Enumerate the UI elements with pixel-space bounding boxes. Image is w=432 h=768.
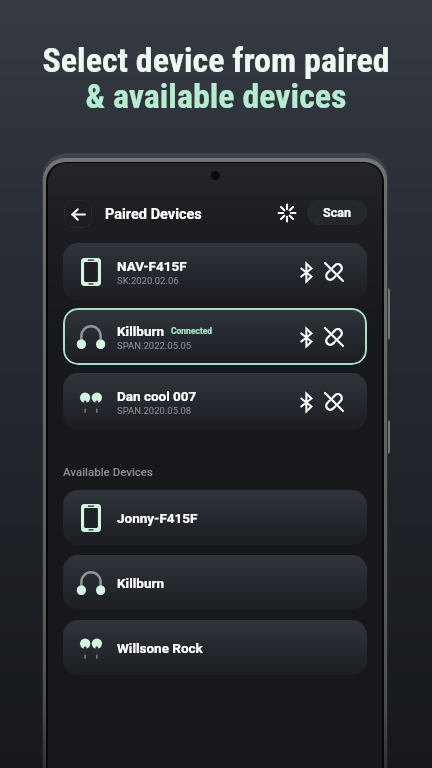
button[interactable]: Refresh scanning — [275, 201, 299, 225]
button[interactable]: Dan cool 007 — [63, 373, 367, 430]
staticText: Available Devices — [63, 465, 153, 478]
button[interactable]: Unpair — [323, 261, 345, 283]
staticText: Paired Devices — [105, 206, 202, 223]
staticText: Scan — [323, 205, 351, 220]
button[interactable]: Bluetooth — [295, 261, 317, 283]
staticText: & available devices — [85, 76, 347, 116]
button[interactable]: NAV-F415F — [63, 243, 367, 300]
staticText: Killburn — [117, 575, 164, 591]
staticText: Jonny-F415F — [117, 510, 198, 526]
button[interactable]: Unpair — [323, 326, 345, 348]
staticText: Dan cool 007 — [117, 388, 197, 404]
button[interactable]: Back — [64, 200, 92, 228]
button[interactable]: Bluetooth — [295, 326, 317, 348]
button[interactable]: Willsone Rock — [63, 620, 367, 675]
staticText: SK:2020.02.06 — [117, 275, 179, 286]
staticText: SPAN.2022.05.05 — [117, 340, 192, 351]
staticText: Connected — [171, 326, 213, 336]
button[interactable]: Scan — [307, 200, 367, 225]
button[interactable]: Killburn — [63, 308, 367, 365]
staticText: SPAN.2020.05.08 — [117, 405, 192, 416]
staticText: Willsone Rock — [117, 640, 203, 656]
button[interactable]: Unpair — [323, 391, 345, 413]
button[interactable]: Jonny-F415F — [63, 490, 367, 545]
staticText: NAV-F415F — [117, 258, 187, 274]
button[interactable]: Killburn — [63, 555, 367, 610]
button[interactable]: Bluetooth — [295, 391, 317, 413]
staticText: Killburn — [117, 323, 164, 339]
staticText: Select device from paired — [42, 40, 390, 80]
